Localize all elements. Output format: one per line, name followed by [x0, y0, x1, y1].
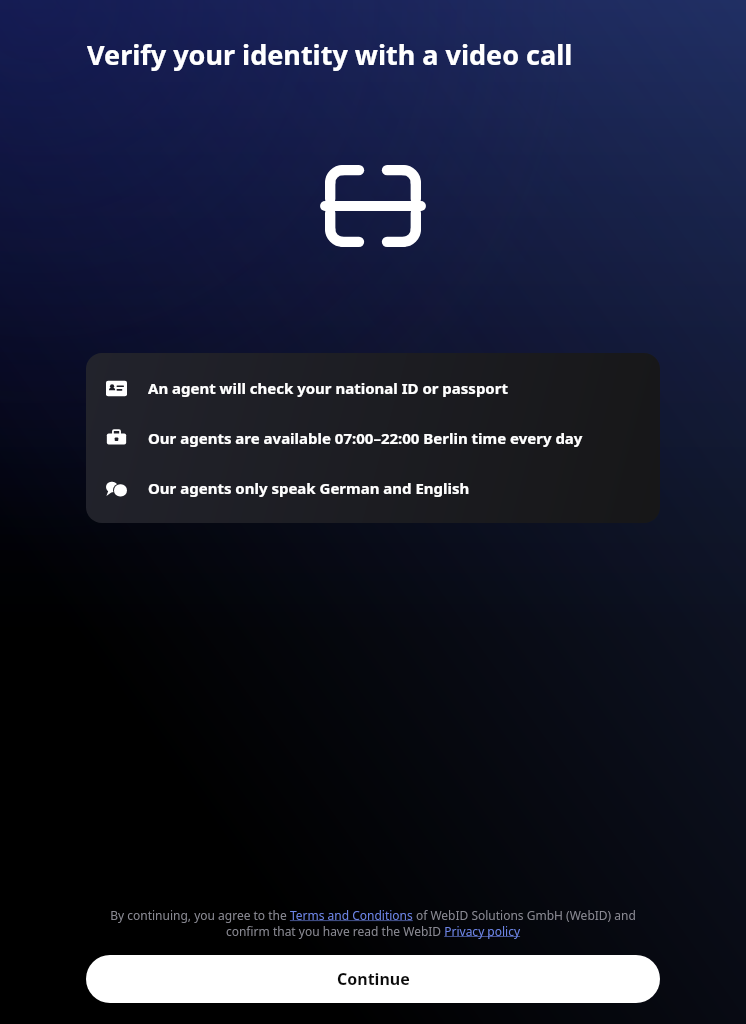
staticText: Our agents only speak German and English — [148, 478, 470, 498]
other: Identity scan — [325, 165, 421, 247]
button[interactable]: An agent will check your national ID or … — [86, 363, 660, 413]
staticText: Continue — [337, 968, 410, 990]
button[interactable]: Our agents are available 07:00–22:00 Ber… — [86, 413, 660, 463]
button[interactable]: Our agents only speak German and English — [86, 463, 660, 513]
button[interactable]: Continue — [86, 955, 660, 1003]
staticText: Verify your identity with a video call — [87, 36, 573, 73]
staticText: By continuing, you agree to the Terms an… — [90, 907, 656, 939]
staticText: An agent will check your national ID or … — [148, 378, 508, 398]
staticText: Our agents are available 07:00–22:00 Ber… — [148, 428, 583, 448]
